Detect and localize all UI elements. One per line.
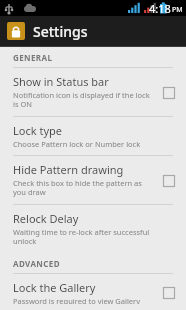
staticText: Lock the Gallery [13,280,96,295]
staticText: Notification icon is displayed if the lo… [13,90,156,110]
button[interactable]: Lock the Gallery [0,274,186,310]
staticText: Choose Pattern lock or Number lock [13,139,141,149]
button[interactable]: Show in Status bar [0,68,186,116]
staticText: PM [172,5,183,15]
button[interactable]: Lock type [0,117,186,155]
staticText: Settings [33,22,88,41]
button[interactable]: Relock Delay [0,205,186,253]
staticText: ADVANCED [13,258,60,269]
staticText: Show in Status bar [13,74,109,89]
staticText: Password is required to view Gallery ima… [13,296,156,304]
button[interactable]: Hide Pattern drawing [0,156,186,204]
staticText: Waiting time to re-lock after successful… [13,227,156,247]
staticText: Relock Delay [13,211,79,226]
staticText: Check this box to hide the pattern as yo… [13,178,156,198]
staticText: 4:18 [149,1,171,16]
staticText: Lock type [13,123,62,138]
button[interactable]: App icon [7,22,25,40]
button[interactable]: Lock the Gallery [162,286,175,299]
button[interactable]: Show in Status bar [162,86,175,99]
button[interactable]: Hide Pattern drawing [162,174,175,187]
staticText: GENERAL [13,52,53,63]
staticText: Hide Pattern drawing [13,162,124,177]
